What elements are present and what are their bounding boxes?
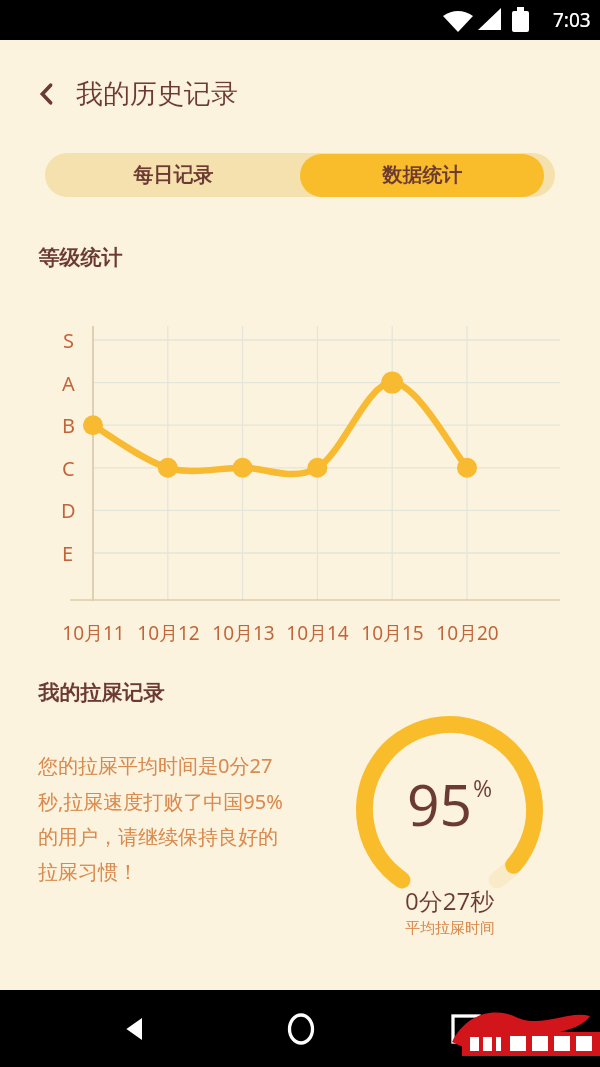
staticText: % [473, 772, 493, 803]
button[interactable]: Home [270, 998, 332, 1060]
staticText: A [62, 370, 75, 397]
button[interactable]: Recents [435, 998, 497, 1060]
staticText: 等级统计 [38, 245, 122, 271]
staticText: 您的拉屎平均时间是0分27秒,拉屎速度打败了中国95%的用户，请继续保持良好的拉… [38, 752, 290, 885]
button[interactable]: 数据统计 [300, 154, 544, 197]
staticText: 我的历史记录 [76, 77, 238, 111]
staticText: 平均拉屎时间 [405, 919, 495, 938]
button[interactable]: Back [105, 998, 167, 1060]
staticText: E [62, 540, 74, 567]
staticText: 0分27秒 [405, 884, 495, 917]
button[interactable]: Back [28, 75, 66, 113]
staticText: 7:03 [553, 7, 591, 33]
staticText: 每日记录 [133, 163, 213, 188]
staticText: 数据统计 [382, 163, 462, 188]
staticText: B [62, 412, 75, 439]
staticText: 10月13 [212, 620, 275, 646]
staticText: C [62, 455, 75, 482]
staticText: 10月12 [137, 620, 200, 646]
staticText: S [63, 327, 74, 354]
button[interactable]: 每日记录 [45, 153, 300, 197]
staticText: 10月20 [436, 620, 499, 646]
staticText: D [61, 497, 76, 524]
staticText: 10月14 [286, 620, 349, 646]
staticText: 10月15 [361, 620, 424, 646]
staticText: 95 [407, 765, 473, 843]
staticText: 10月11 [62, 620, 125, 646]
staticText: 我的拉屎记录 [38, 680, 164, 706]
